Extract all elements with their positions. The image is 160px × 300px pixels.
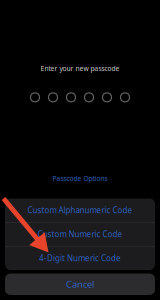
staticText: Cancel [66,278,94,290]
button[interactable]: 4-Digit Numeric Code [5,246,155,270]
button[interactable]: Custom Alphanumeric Code [5,198,155,222]
button[interactable]: Custom Numeric Code [5,222,155,246]
staticText: 4-Digit Numeric Code [39,253,121,263]
staticText: Custom Numeric Code [37,229,122,239]
button[interactable]: Passcode Options [40,173,120,184]
staticText: Custom Alphanumeric Code [27,205,132,215]
staticText: Enter your new passcode [40,64,119,73]
button[interactable]: Cancel [5,273,155,295]
staticText: Passcode Options [52,174,107,183]
